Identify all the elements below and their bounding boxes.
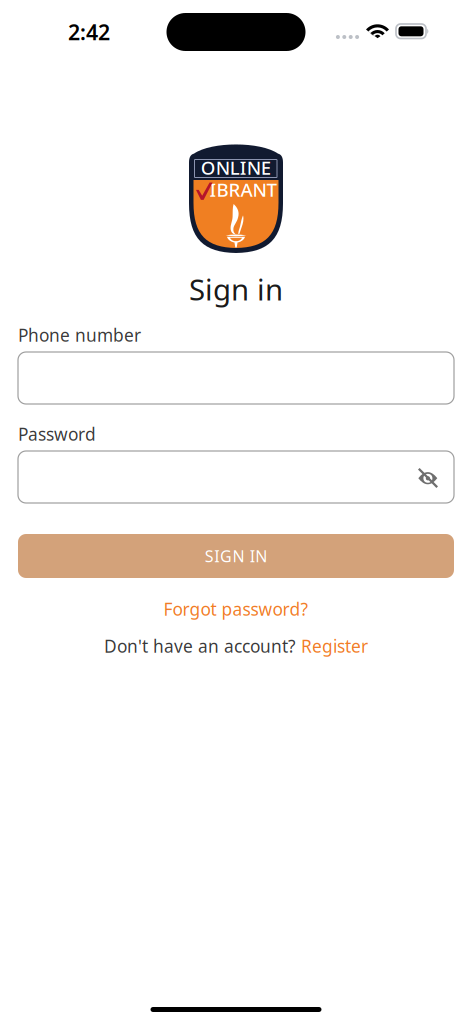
button[interactable]: SIGN IN [18, 534, 454, 578]
staticText: IBRANT [209, 177, 276, 202]
button[interactable]: Password field [18, 451, 454, 503]
button[interactable]: Register [301, 634, 368, 657]
staticText: Forgot password? [163, 597, 308, 620]
staticText: 2:42 [68, 18, 110, 46]
staticText: Register [301, 634, 368, 657]
staticText: Phone number [18, 323, 141, 346]
staticText: Don't have an account? [104, 634, 301, 657]
button[interactable]: Phone number field [18, 352, 454, 404]
button[interactable]: Show password [418, 468, 438, 488]
staticText: ONLINE [201, 155, 271, 180]
staticText: SIGN IN [205, 545, 267, 567]
staticText: Password [18, 422, 96, 445]
button[interactable]: Forgot password? [157, 598, 314, 620]
staticText: Sign in [189, 269, 283, 308]
